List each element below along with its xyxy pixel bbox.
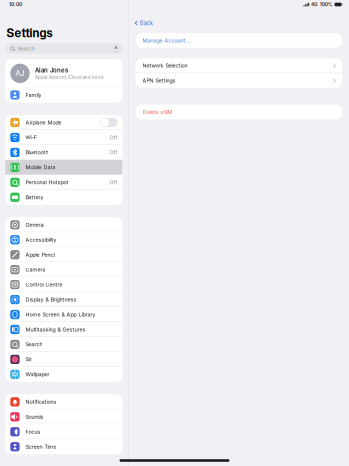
staticText: Family (25, 92, 41, 98)
button[interactable]: Multitasking & Gestures (5, 322, 122, 337)
button[interactable]: Siri (5, 352, 122, 367)
button[interactable]: Bluetooth (5, 145, 122, 160)
staticText: Airplane Mode (25, 119, 61, 126)
staticText: 10:00 (9, 2, 22, 7)
button[interactable]: Manage Account... (136, 33, 342, 48)
button[interactable]: Screen Time (5, 439, 122, 454)
staticText: Apple Account, iCloud and more (35, 75, 104, 80)
button[interactable]: Sounds (5, 409, 122, 424)
staticText: APN Settings (143, 77, 176, 84)
staticText: Camera (25, 266, 45, 273)
staticText: Notifications (25, 399, 56, 405)
staticText: Personal Hotspot (25, 179, 68, 186)
button[interactable]: Mobile Data (5, 160, 122, 175)
staticText: Manage Account... (143, 37, 192, 44)
staticText: Search (18, 45, 35, 52)
button[interactable]: Camera (5, 262, 122, 277)
staticText: Delete eSIM (143, 109, 173, 115)
staticText: Focus (25, 428, 40, 435)
staticText: Accessibility (25, 236, 56, 243)
button[interactable]: Wallpaper (5, 367, 122, 382)
staticText: Wi-Fi (25, 134, 37, 141)
staticText: 4G (311, 2, 318, 7)
staticText: Alan Jones (35, 67, 68, 74)
staticText: Control Centre (25, 281, 62, 288)
button[interactable]: AJ (5, 59, 122, 87)
button[interactable]: Display & Brightness (5, 292, 122, 307)
staticText: Off (109, 179, 117, 186)
button[interactable]: Delete eSIM (136, 105, 342, 119)
button[interactable]: APN Settings (136, 73, 342, 88)
staticText: 100% (320, 2, 333, 7)
button[interactable]: Accessibility (5, 232, 122, 247)
staticText: Siri (25, 356, 32, 363)
staticText: Sounds (25, 414, 43, 420)
staticText: Off (109, 134, 117, 141)
staticText: Settings (6, 26, 52, 40)
staticText: Network Selection (143, 62, 188, 69)
staticText: Battery (25, 194, 43, 200)
button[interactable]: Notifications (5, 394, 122, 409)
staticText: Search (25, 341, 42, 348)
staticText: Multitasking & Gestures (25, 326, 85, 333)
button[interactable]: Home Screen & App Library (5, 307, 122, 322)
button[interactable]: Personal Hotspot (5, 175, 122, 190)
button[interactable]: Back (129, 9, 153, 29)
staticText: Bluetooth (25, 149, 48, 156)
button[interactable]: Apple Pencil (5, 247, 122, 262)
staticText: General (25, 222, 44, 228)
staticText: Apple Pencil (25, 251, 55, 258)
staticText: Screen Time (25, 443, 56, 450)
staticText: Display & Brightness (25, 296, 76, 303)
button[interactable]: General (5, 217, 122, 232)
button[interactable]: Airplane Mode (5, 115, 122, 130)
button[interactable]: Control Centre (5, 277, 122, 292)
staticText: Off (109, 149, 117, 156)
button[interactable]: Battery (5, 190, 122, 205)
button[interactable]: Wi-Fi (5, 130, 122, 145)
staticText: Back (140, 19, 153, 27)
staticText: Mobile Data (25, 164, 55, 171)
button[interactable]: Focus (5, 424, 122, 439)
staticText: Home Screen & App Library (25, 311, 95, 318)
button[interactable]: Family (5, 87, 122, 102)
button[interactable]: Network Selection (136, 58, 342, 73)
staticText: Wallpaper (25, 371, 49, 378)
staticText: AJ (15, 69, 24, 78)
button[interactable]: Search (5, 337, 122, 352)
button[interactable]: Search (0, 40, 128, 54)
